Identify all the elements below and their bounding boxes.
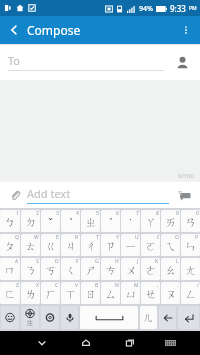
button[interactable]: Enter xyxy=(178,306,199,329)
button[interactable]: 5 xyxy=(81,210,100,232)
staticText: 0/160 xyxy=(178,172,194,180)
staticText: Y xyxy=(116,234,119,241)
button[interactable]: T xyxy=(81,234,100,256)
staticText: 5 xyxy=(96,210,99,217)
button[interactable]: . xyxy=(161,282,180,304)
button[interactable]: Emoji xyxy=(1,306,19,329)
button[interactable]: Space xyxy=(80,306,138,329)
staticText: ㄗ xyxy=(105,239,117,253)
staticText: 3 xyxy=(56,210,59,217)
button[interactable]: Z xyxy=(0,282,20,304)
staticText: ˇ xyxy=(48,215,53,230)
button[interactable]: N xyxy=(101,282,120,304)
staticText: 9 xyxy=(176,210,179,217)
staticText: 0 xyxy=(196,210,199,217)
button[interactable]: Attach xyxy=(7,187,23,203)
button[interactable]: Add contact xyxy=(172,52,192,72)
staticText: P xyxy=(195,234,199,241)
button[interactable]: 0 xyxy=(181,210,200,232)
button[interactable]: P xyxy=(181,234,200,256)
button[interactable]: S xyxy=(21,258,40,280)
staticText: ㄕ xyxy=(85,263,97,277)
button[interactable]: M xyxy=(121,282,140,304)
staticText: ㄡ xyxy=(165,287,177,301)
button[interactable]: O xyxy=(161,234,180,256)
button[interactable]: ㄤ xyxy=(181,258,200,280)
button[interactable]: / xyxy=(181,282,200,304)
staticText: Compose xyxy=(27,22,81,38)
button[interactable]: Recents xyxy=(115,331,144,355)
staticText: T xyxy=(96,234,99,241)
staticText: ㄜ xyxy=(145,263,157,277)
button[interactable]: 4 xyxy=(61,210,80,232)
button[interactable]: H xyxy=(101,258,120,280)
button[interactable]: To xyxy=(8,53,164,71)
staticText: ㄊ xyxy=(25,239,37,253)
staticText: PM xyxy=(189,5,197,12)
button[interactable]: L xyxy=(161,258,180,280)
staticText: Add text xyxy=(27,186,71,201)
staticText: 7 xyxy=(136,210,139,217)
staticText: F xyxy=(76,258,79,265)
staticText: ㄉ xyxy=(25,215,37,229)
button[interactable]: Back xyxy=(0,16,28,44)
button[interactable]: Voice input xyxy=(61,306,78,329)
button[interactable]: 1 xyxy=(0,210,20,232)
staticText: ㄥ xyxy=(185,287,197,301)
staticText: ㄏ xyxy=(45,287,57,301)
button[interactable]: V xyxy=(61,282,80,304)
staticText: ㄅ xyxy=(4,215,16,229)
button[interactable]: Switch language xyxy=(21,306,39,329)
button[interactable]: 7 xyxy=(121,210,140,232)
staticText: 9:33 xyxy=(170,3,186,14)
staticText: L xyxy=(176,258,179,265)
button[interactable]: 3 xyxy=(41,210,60,232)
staticText: ㄠ xyxy=(165,263,177,277)
button[interactable]: , xyxy=(141,282,160,304)
staticText: ㄤ xyxy=(185,263,197,277)
staticText: ㄢ xyxy=(185,215,197,229)
button[interactable]: W xyxy=(21,234,40,256)
button[interactable]: B xyxy=(81,282,100,304)
button[interactable]: 9 xyxy=(161,210,180,232)
button[interactable]: A xyxy=(0,258,20,280)
staticText: ㄣ xyxy=(185,239,197,253)
button[interactable]: U xyxy=(121,234,140,256)
button[interactable]: D xyxy=(41,258,60,280)
button[interactable]: Send xyxy=(175,186,193,204)
button[interactable]: F xyxy=(61,258,80,280)
staticText: N xyxy=(115,282,119,289)
button[interactable]: E xyxy=(41,234,60,256)
button[interactable]: More options xyxy=(172,16,200,44)
staticText: 2 xyxy=(36,210,39,217)
button[interactable]: I xyxy=(141,234,160,256)
staticText: ㄇ xyxy=(4,263,16,277)
staticText: 94% xyxy=(139,4,153,14)
staticText: 8 xyxy=(156,210,159,217)
button[interactable]: J xyxy=(121,258,140,280)
button[interactable]: Add text xyxy=(27,186,169,204)
staticText: ˙ xyxy=(129,215,132,230)
staticText: , xyxy=(157,282,159,289)
button[interactable]: C xyxy=(41,282,60,304)
button[interactable]: R xyxy=(61,234,80,256)
button[interactable]: G xyxy=(81,258,100,280)
staticText: V xyxy=(75,282,79,289)
staticText: E xyxy=(56,234,59,241)
button[interactable]: X xyxy=(21,282,40,304)
button[interactable]: Settings xyxy=(41,306,59,329)
button[interactable]: Hide keyboard xyxy=(27,331,56,355)
button[interactable]: Home xyxy=(71,331,100,355)
button[interactable]: 2 xyxy=(21,210,40,232)
button[interactable]: 6 xyxy=(101,210,120,232)
button[interactable]: 8 xyxy=(141,210,160,232)
button[interactable]: ㄦ xyxy=(140,306,157,329)
button[interactable]: Q xyxy=(0,234,20,256)
staticText: ˊ xyxy=(109,215,113,230)
button[interactable]: Keyboard switcher xyxy=(156,331,185,355)
button[interactable]: Y xyxy=(101,234,120,256)
staticText: ㄩ xyxy=(125,287,137,301)
button[interactable]: Backspace xyxy=(159,306,176,329)
button[interactable]: K xyxy=(141,258,160,280)
